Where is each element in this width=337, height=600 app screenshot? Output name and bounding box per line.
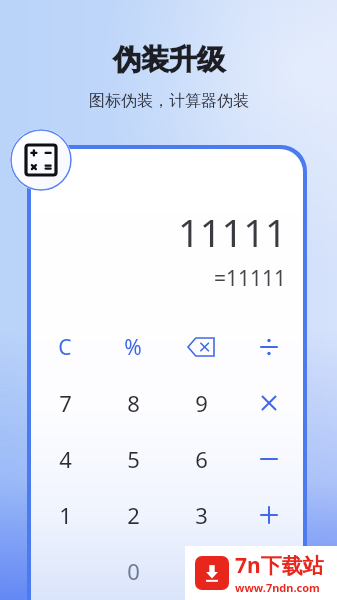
button[interactable]: Plus [235,487,303,543]
button[interactable]: Minus [235,431,303,487]
button[interactable]: 6 [167,431,235,487]
staticText: C [58,333,72,362]
staticText: 1 [59,500,72,530]
button[interactable]: 8 [99,375,167,431]
button[interactable]: 5 [99,431,167,487]
button[interactable]: 7 [31,375,99,431]
button[interactable]: C [31,319,99,375]
staticText: =11111 [214,264,287,293]
button[interactable]: 0 [99,543,167,599]
button[interactable]: Multiply [235,375,303,431]
staticText: www.7ndn.com [235,580,320,595]
button[interactable]: Calculator disguise icon [10,129,72,191]
staticText: 伪装升级 [113,42,225,77]
button[interactable]: 4 [31,431,99,487]
staticText: 6 [195,444,208,474]
button[interactable]: 9 [167,375,235,431]
staticText: 0 [127,556,140,586]
staticText: 2 [127,500,140,530]
staticText: 4 [59,444,72,474]
button[interactable]: Backspace [167,319,235,375]
button[interactable]: 1 [31,487,99,543]
staticText: 11111 [178,206,287,258]
button[interactable]: 3 [167,487,235,543]
staticText: 3 [195,500,208,530]
staticText: 7 [59,388,72,418]
staticText: 5 [127,444,140,474]
button[interactable]: Divide [235,319,303,375]
staticText: 8 [127,388,140,418]
staticText: 9 [195,388,208,418]
button[interactable]: 2 [99,487,167,543]
staticText: % [124,333,142,362]
staticText: 7n下载站 [235,551,324,580]
button[interactable]: % [99,319,167,375]
staticText: 图标伪装，计算器伪装 [89,91,249,111]
